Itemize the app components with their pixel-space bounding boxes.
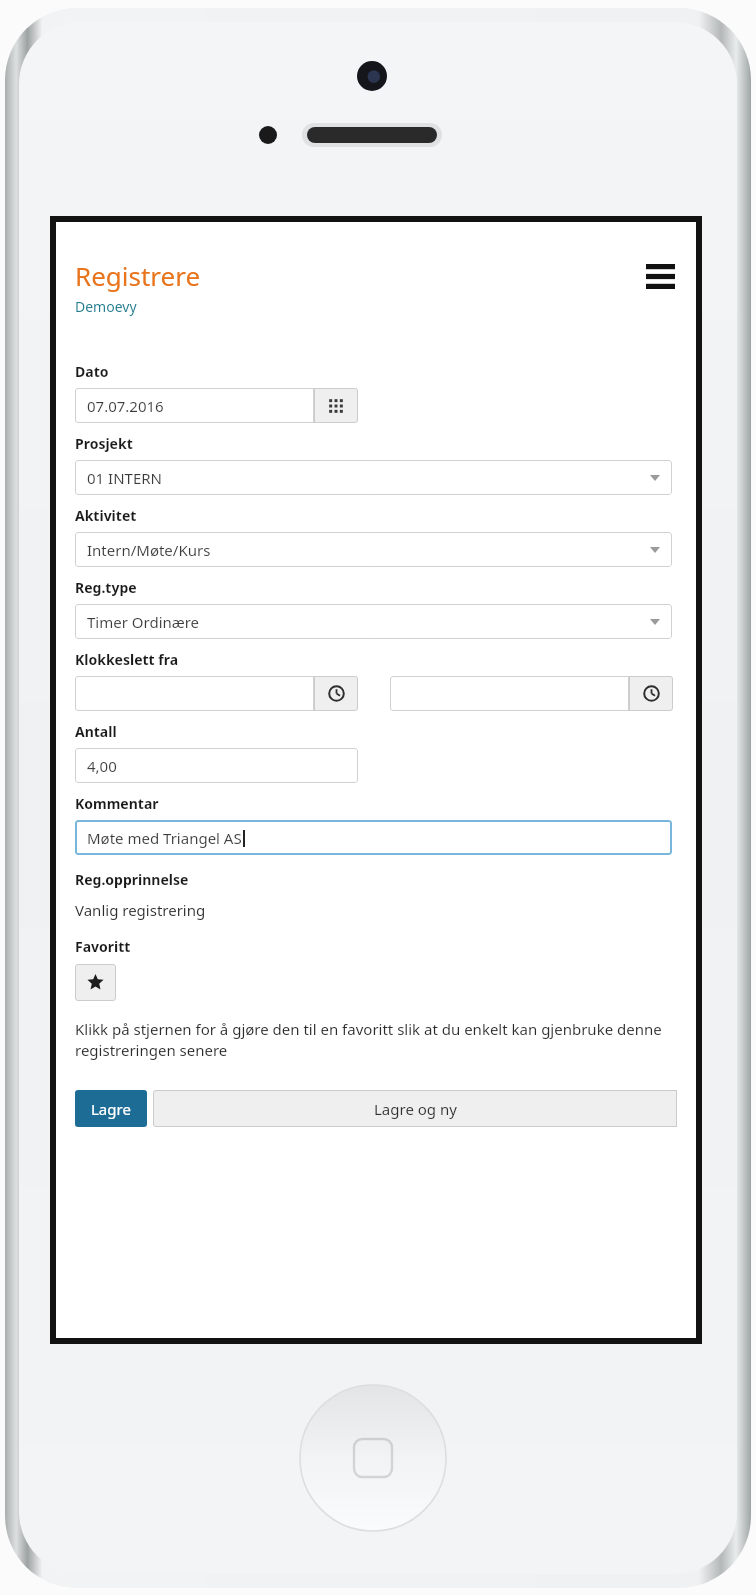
staticText: Klikk på stjernen for å gjøre den til en… <box>75 1019 677 1061</box>
button[interactable]: Choose date <box>314 388 358 423</box>
button[interactable]: 4,00 <box>75 748 358 783</box>
button[interactable]: Registrere <box>75 258 201 293</box>
button[interactable] <box>75 676 314 711</box>
button[interactable]: Lagre og ny <box>153 1090 677 1127</box>
staticText: Reg.opprinnelse <box>75 870 189 889</box>
staticText: Lagre <box>91 1099 131 1119</box>
button[interactable]: Timer Ordinære <box>75 604 672 639</box>
staticText: Aktivitet <box>75 506 137 525</box>
staticText: Lagre og ny <box>374 1099 457 1119</box>
staticText: Favoritt <box>75 937 131 956</box>
button[interactable]: Lagre <box>75 1090 147 1127</box>
staticText: Kommentar <box>75 794 159 813</box>
button[interactable]: Mark as favourite <box>75 964 116 1001</box>
staticText: Antall <box>75 722 117 741</box>
staticText: Møte med Triangel AS <box>87 828 242 848</box>
staticText: Klokkeslett fra <box>75 650 179 669</box>
button[interactable]: 07.07.2016 <box>75 388 314 423</box>
staticText: Prosjekt <box>75 434 133 453</box>
button[interactable]: Intern/Møte/Kurs <box>75 532 672 567</box>
button[interactable]: Menu <box>643 259 677 293</box>
staticText: Intern/Møte/Kurs <box>87 540 211 560</box>
staticText: Timer Ordinære <box>87 612 200 632</box>
staticText: 07.07.2016 <box>87 396 164 416</box>
staticText: Reg.type <box>75 578 137 597</box>
staticText: Dato <box>75 362 109 381</box>
button[interactable]: Pick end time <box>629 676 673 711</box>
button[interactable]: Demoevy <box>75 297 137 316</box>
button[interactable] <box>390 676 629 711</box>
button[interactable]: Møte med Triangel AS <box>75 820 672 855</box>
button[interactable]: Pick start time <box>314 676 358 711</box>
staticText: Vanlig registrering <box>75 900 206 920</box>
staticText: 01 INTERN <box>87 468 162 488</box>
button[interactable]: 01 INTERN <box>75 460 672 495</box>
staticText: 4,00 <box>87 756 117 776</box>
